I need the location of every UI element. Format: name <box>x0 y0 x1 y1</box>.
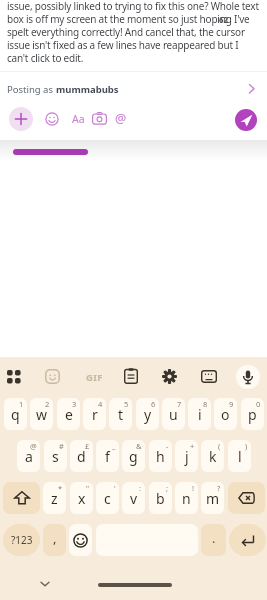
button[interactable]: o <box>214 398 237 430</box>
button[interactable]: @ <box>111 105 131 131</box>
button[interactable]: n <box>175 482 198 514</box>
staticText: r <box>92 405 98 424</box>
button[interactable] <box>124 368 138 384</box>
staticText: @ <box>30 441 37 451</box>
staticText: , <box>53 529 57 547</box>
button[interactable] <box>229 524 266 556</box>
staticText: £ <box>85 441 90 451</box>
staticText: w <box>36 405 48 424</box>
button[interactable]: Posting as <box>0 72 267 103</box>
button[interactable] <box>92 112 107 125</box>
button[interactable]: v <box>122 482 145 514</box>
staticText: + <box>190 441 195 451</box>
staticText: box is off my screen at the moment so ju… <box>7 12 250 26</box>
button[interactable]: f <box>96 440 119 472</box>
button[interactable] <box>235 109 257 131</box>
button[interactable] <box>3 482 40 514</box>
button[interactable] <box>9 107 33 131</box>
staticText: 0 <box>256 399 261 409</box>
staticText: 4 <box>98 399 103 409</box>
button[interactable]: u <box>162 398 185 430</box>
button[interactable]: y <box>136 398 159 430</box>
button[interactable]: h <box>149 440 172 472</box>
button[interactable]: q <box>4 398 27 430</box>
button[interactable]: b <box>149 482 172 514</box>
button[interactable] <box>236 365 260 389</box>
staticText: 5 <box>124 399 129 409</box>
staticText: s <box>52 447 59 466</box>
staticText: @ <box>115 110 127 127</box>
button[interactable]: GIF <box>85 371 103 383</box>
button[interactable]: i <box>188 398 211 430</box>
staticText: e <box>65 405 73 424</box>
staticText: i <box>198 405 202 424</box>
button[interactable]: e <box>57 398 80 430</box>
staticText: ! <box>192 483 195 493</box>
staticText: a <box>25 447 33 466</box>
staticText: . <box>212 529 216 547</box>
button[interactable]: a <box>17 440 40 472</box>
staticText: ?123 <box>11 533 33 547</box>
staticText: o <box>221 405 230 424</box>
button[interactable]: w <box>30 398 53 430</box>
staticText: * <box>58 483 63 493</box>
button[interactable]: m <box>201 482 224 514</box>
button[interactable] <box>201 370 217 383</box>
staticText: _ <box>112 441 116 451</box>
button[interactable]: d <box>70 440 93 472</box>
staticText: - <box>166 441 169 451</box>
staticText: 6 <box>151 399 156 409</box>
button[interactable]: k <box>201 440 224 472</box>
staticText: GIF <box>86 371 103 383</box>
button[interactable]: c <box>96 482 119 514</box>
button[interactable]: s <box>44 440 67 472</box>
button[interactable]: z <box>43 482 66 514</box>
staticText: j <box>185 447 189 466</box>
staticText: " <box>86 483 90 493</box>
button[interactable]: , <box>43 524 66 556</box>
staticText: & <box>136 441 142 451</box>
staticText: q <box>11 405 20 424</box>
button[interactable] <box>45 112 59 126</box>
staticText: 1 <box>19 399 24 409</box>
staticText: ? <box>217 483 221 493</box>
button[interactable]: Aa <box>69 107 87 131</box>
button[interactable]: j <box>175 440 198 472</box>
button[interactable]: . <box>201 524 226 556</box>
button[interactable] <box>45 369 60 384</box>
button[interactable]: ?123 <box>3 524 40 556</box>
staticText: 2 <box>45 399 50 409</box>
staticText: h <box>156 447 165 466</box>
staticText: t <box>118 405 124 424</box>
staticText: ( <box>218 441 221 451</box>
button[interactable]: x <box>70 482 93 514</box>
staticText: ) <box>245 441 248 451</box>
staticText: y <box>144 405 152 424</box>
staticText: v <box>130 489 138 508</box>
button[interactable]: g <box>122 440 145 472</box>
button[interactable] <box>228 482 265 514</box>
staticText: m <box>206 489 220 508</box>
staticText: 3 <box>72 399 77 409</box>
staticText: 8 <box>203 399 208 409</box>
button[interactable]: l <box>228 440 251 472</box>
staticText: p <box>248 405 257 424</box>
staticText: issue isn't fixed as a few lines have re… <box>7 38 239 52</box>
button[interactable] <box>7 370 21 384</box>
staticText: x <box>78 489 86 508</box>
staticText: g <box>129 447 138 466</box>
staticText: mummabubs <box>56 83 119 96</box>
button[interactable] <box>162 369 177 384</box>
button[interactable] <box>69 524 92 556</box>
staticText: d <box>77 447 86 466</box>
staticText: spelt everything correctly! And cancel t… <box>7 25 245 39</box>
button[interactable]: p <box>241 398 264 430</box>
staticText: ' <box>114 483 116 493</box>
button[interactable]: t <box>109 398 132 430</box>
button[interactable]: r <box>83 398 106 430</box>
staticText: issue, possibly linked to trying to fix … <box>7 0 259 13</box>
staticText: ; <box>166 483 169 493</box>
staticText: u <box>169 405 178 424</box>
staticText: k <box>209 447 217 466</box>
